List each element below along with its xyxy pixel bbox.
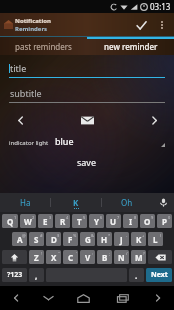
button[interactable]: B: [97, 250, 112, 264]
button[interactable]: Next icon: [143, 109, 165, 131]
staticText: W: [24, 216, 32, 227]
staticText: X: [51, 252, 57, 263]
staticText: 0: [168, 215, 171, 220]
button[interactable]: new reminder: [87, 37, 174, 55]
button[interactable]: Next: [146, 268, 172, 282]
staticText: 9: [151, 215, 154, 220]
button[interactable]: Oh: [102, 193, 152, 212]
staticText: blue: [55, 135, 74, 147]
staticText: &: [91, 233, 94, 238]
staticText: A: [17, 234, 23, 245]
button[interactable]: Done: [130, 14, 152, 36]
staticText: ?123: [7, 270, 23, 280]
staticText: P: [162, 216, 167, 227]
button[interactable]: Ha: [0, 193, 50, 212]
staticText: M: [135, 252, 143, 263]
staticText: T: [77, 216, 82, 227]
staticText: title: [10, 62, 27, 74]
staticText: ': [76, 251, 77, 256]
staticText: 2: [32, 215, 35, 220]
staticText: 3: [49, 215, 52, 220]
button[interactable]: E: [38, 214, 53, 228]
staticText: *: [108, 233, 111, 238]
button[interactable]: W: [20, 214, 36, 228]
staticText: Next: [151, 270, 168, 280]
button[interactable]: indicator light: [9, 135, 165, 147]
staticText: Y: [94, 216, 100, 227]
button[interactable]: Backspace: [148, 250, 172, 264]
button[interactable]: L: [148, 232, 163, 246]
staticText: 7: [117, 215, 120, 220]
staticText: (: [160, 233, 162, 238]
button[interactable]: .: [129, 268, 144, 282]
button[interactable]: ?123: [2, 268, 27, 282]
staticText: ?: [143, 251, 145, 256]
button[interactable]: Q: [2, 214, 18, 228]
staticText: 4: [66, 215, 69, 220]
staticText: %: [73, 233, 77, 238]
button[interactable]: Hide keyboard: [32, 286, 64, 310]
button[interactable]: More options: [154, 17, 170, 33]
button[interactable]: S: [29, 232, 44, 246]
staticText: @: [22, 233, 26, 238]
button[interactable]: Shift: [2, 250, 27, 264]
staticText: $: [57, 233, 60, 238]
staticText: 6: [100, 215, 103, 220]
staticText: .: [135, 270, 138, 281]
button[interactable]: A: [12, 232, 27, 246]
button[interactable]: Recent apps: [103, 286, 142, 310]
staticText: :: [92, 251, 94, 256]
button[interactable]: Home: [64, 286, 103, 310]
button[interactable]: O: [140, 214, 155, 228]
button[interactable]: M: [131, 250, 146, 264]
staticText: ,: [35, 270, 38, 281]
button[interactable]: K: [131, 232, 146, 246]
button[interactable]: K: [51, 193, 101, 212]
button[interactable]: I: [123, 214, 138, 228]
button[interactable]: N: [114, 250, 129, 264]
button[interactable]: D: [46, 232, 61, 246]
button[interactable]: save: [67, 154, 107, 170]
button[interactable]: Back: [0, 286, 32, 310]
staticText: V: [85, 252, 91, 263]
button[interactable]: R: [55, 214, 70, 228]
button[interactable]: U: [106, 214, 121, 228]
staticText: Ha: [20, 197, 31, 208]
button[interactable]: past reminders: [0, 37, 87, 55]
staticText: L: [153, 234, 158, 245]
button[interactable]: T: [72, 214, 87, 228]
staticText: #: [40, 233, 43, 238]
button[interactable]: title: [9, 62, 165, 78]
staticText: ": [58, 251, 60, 256]
button[interactable]: ,: [29, 268, 44, 282]
staticText: R: [60, 216, 66, 227]
button[interactable]: C: [63, 250, 78, 264]
staticText: Oh: [121, 197, 133, 208]
staticText: ;: [109, 251, 111, 256]
button[interactable]: V: [80, 250, 95, 264]
button[interactable]: H: [97, 232, 112, 246]
staticText: I: [129, 216, 133, 227]
button[interactable]: Previous icon: [9, 109, 31, 131]
staticText: K: [73, 197, 79, 208]
button[interactable]: Y: [89, 214, 104, 228]
staticText: O: [144, 216, 151, 227]
button[interactable]: P: [157, 214, 172, 228]
button[interactable]: F: [63, 232, 78, 246]
button[interactable]: subtitle: [9, 87, 165, 103]
button[interactable]: Notification icon: [79, 112, 95, 128]
button[interactable]: Forward: [142, 286, 174, 310]
button[interactable]: X: [46, 250, 61, 264]
staticText: E: [43, 216, 48, 227]
staticText: -: [126, 233, 128, 238]
button[interactable]: Z: [29, 250, 44, 264]
button[interactable]: J: [114, 232, 129, 246]
button[interactable]: Voice input: [152, 193, 174, 212]
staticText: !: [41, 251, 43, 256]
button[interactable]: G: [80, 232, 95, 246]
staticText: K: [136, 234, 142, 245]
staticText: 1: [14, 215, 17, 220]
staticText: 03:13: [150, 1, 171, 12]
staticText: subtitle: [10, 87, 42, 99]
